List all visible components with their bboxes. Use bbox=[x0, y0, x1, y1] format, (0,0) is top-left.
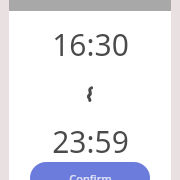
other: Until bbox=[85, 87, 95, 101]
staticText: 16:30 bbox=[52, 24, 129, 65]
staticText: 23:59 bbox=[52, 121, 129, 162]
button[interactable]: 16:30 bbox=[9, 24, 171, 65]
staticText: Confirm bbox=[69, 171, 112, 180]
button[interactable]: 23:59 bbox=[9, 121, 171, 162]
button[interactable]: Confirm bbox=[30, 162, 150, 180]
